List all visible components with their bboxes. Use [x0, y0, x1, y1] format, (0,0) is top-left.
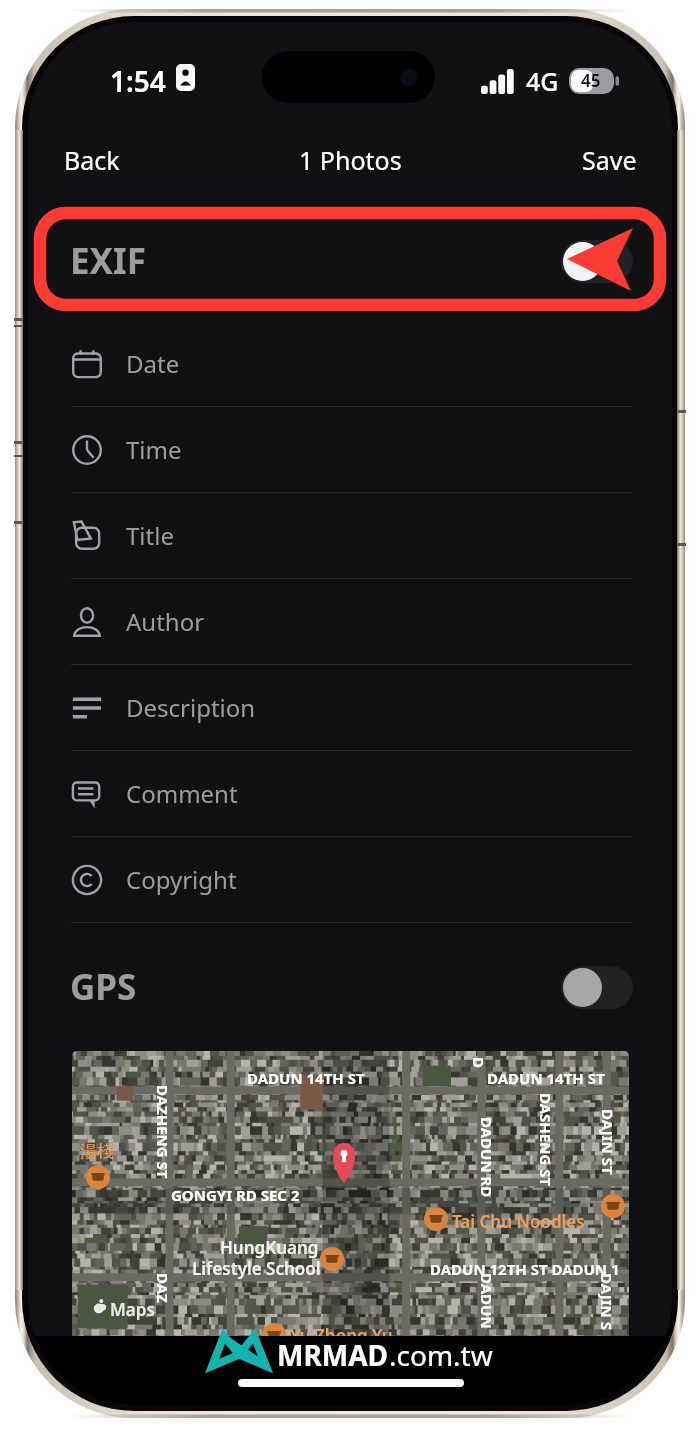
staticText: HungKuang: [220, 1236, 319, 1259]
staticText: DADUN 14TH ST: [247, 1068, 365, 1088]
staticText: 45: [581, 69, 601, 92]
staticText: .com.tw: [389, 1336, 493, 1374]
staticText: Time: [126, 433, 182, 466]
staticText: Title: [126, 519, 174, 552]
staticText: DADUN: [477, 1273, 497, 1329]
staticText: GONGYI RD SEC 2: [171, 1185, 300, 1205]
staticText: Yu Zhong Yu: [290, 1324, 393, 1343]
staticText: Back: [64, 143, 120, 177]
button[interactable]: Author: [28, 579, 672, 664]
button[interactable]: Time: [28, 407, 672, 492]
staticText: Lifestyle School: [192, 1257, 321, 1280]
staticText: Author: [126, 605, 205, 638]
button[interactable]: Copyright: [28, 837, 672, 922]
staticText: Comment: [126, 777, 238, 810]
staticText: DADUN RD: [477, 1117, 497, 1198]
staticText: DADUN 14TH ST: [487, 1068, 605, 1088]
button[interactable]: EXIF: [28, 215, 672, 307]
staticText: DADUN 12TH ST DADUN 1: [430, 1259, 620, 1279]
staticText: 4G: [526, 64, 559, 98]
staticText: Tai Chu Noodles: [452, 1210, 585, 1233]
staticText: DAZHENG ST: [153, 1085, 173, 1179]
staticText: GPS: [70, 963, 137, 1011]
button[interactable]: Comment: [28, 751, 672, 836]
staticText: DAZ: [153, 1273, 173, 1303]
button[interactable]: Description: [28, 665, 672, 750]
staticText: 1 Photos: [299, 143, 402, 177]
staticText: DASHENG ST: [536, 1093, 556, 1187]
staticText: DAJIN S: [597, 1273, 617, 1330]
staticText: Date: [126, 347, 180, 380]
staticText: Description: [126, 691, 256, 724]
staticText: EXIF: [70, 237, 146, 285]
staticText: 湯棧: [80, 1141, 114, 1162]
button[interactable]: Save: [566, 134, 653, 186]
staticText: D: [469, 1057, 489, 1068]
button[interactable]: Title: [28, 493, 672, 578]
staticText: Save: [582, 143, 637, 177]
button[interactable]: Back: [48, 134, 136, 186]
staticText: DAJIN ST: [598, 1109, 618, 1175]
button[interactable]: GPS: [28, 944, 672, 1030]
button[interactable]: Toggle: [561, 240, 633, 283]
button[interactable]: Toggle: [561, 966, 633, 1009]
button[interactable]: Date: [28, 321, 672, 406]
staticText: Copyright: [126, 863, 237, 896]
staticText: MRMAD: [277, 1336, 389, 1374]
staticText: 1:54: [110, 62, 166, 100]
staticText: Maps: [110, 1298, 155, 1321]
